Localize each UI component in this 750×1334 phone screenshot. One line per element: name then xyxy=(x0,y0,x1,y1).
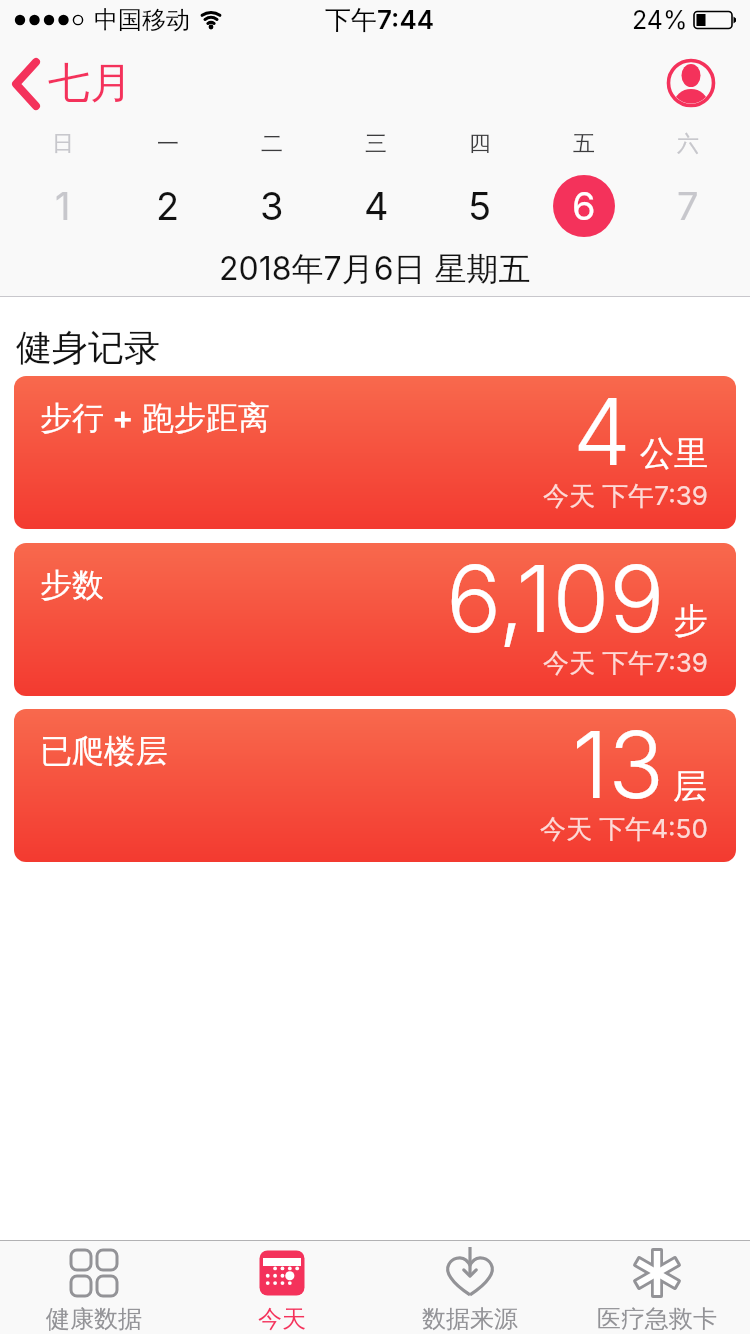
staticText: 2 xyxy=(156,183,180,229)
staticText: 今天 xyxy=(258,1304,306,1334)
staticText: 数据来源 xyxy=(422,1304,518,1334)
staticText: 今天 下午7:39 xyxy=(543,647,708,677)
staticText: 4 公里 xyxy=(573,376,708,487)
staticText: 健康数据 xyxy=(46,1304,142,1334)
button[interactable]: 1 xyxy=(10,162,115,250)
staticText: 3 xyxy=(260,183,284,229)
staticText: 2018年7月6日 星期五 xyxy=(219,249,531,290)
staticText: 三 xyxy=(365,130,387,158)
staticText: 今天 下午7:39 xyxy=(543,480,708,510)
button[interactable]: 数据来源 xyxy=(376,1241,564,1334)
staticText: 五 xyxy=(573,130,595,158)
button[interactable]: 步数 xyxy=(14,543,736,696)
button[interactable]: 2 xyxy=(115,162,220,250)
button[interactable]: 已爬楼层 xyxy=(14,709,736,862)
staticText: 24% xyxy=(632,5,688,35)
staticText: 步行 + 跑步距离 xyxy=(40,398,270,439)
staticText: 一 xyxy=(157,130,179,158)
button[interactable]: 七月 xyxy=(12,57,132,110)
button[interactable]: 5 xyxy=(428,162,532,250)
staticText: 今天 下午4:50 xyxy=(540,813,708,843)
button[interactable] xyxy=(666,58,716,108)
staticText: 二 xyxy=(261,130,283,158)
staticText: 已爬楼层 xyxy=(40,731,168,771)
staticText: 步数 xyxy=(40,565,104,605)
staticText: 七月 xyxy=(48,57,132,110)
staticText: 7 xyxy=(677,183,699,229)
button[interactable]: 今天 xyxy=(188,1241,376,1334)
button[interactable]: 6 xyxy=(532,162,636,250)
button[interactable]: 健康数据 xyxy=(0,1241,188,1334)
staticText: 健身记录 xyxy=(16,325,160,370)
button[interactable]: 医疗急救卡 xyxy=(564,1241,750,1334)
button[interactable]: 4 xyxy=(324,162,428,250)
staticText: 四 xyxy=(469,130,491,158)
button[interactable]: 3 xyxy=(220,162,324,250)
staticText: 6 xyxy=(572,183,596,229)
staticText: 4 xyxy=(364,183,389,229)
staticText: 中国移动 xyxy=(94,5,190,35)
button[interactable]: 步行 + 跑步距离 xyxy=(14,376,736,529)
staticText: 下午7:44 xyxy=(325,4,435,37)
staticText: 1 xyxy=(55,183,71,229)
button[interactable]: 7 xyxy=(636,162,740,250)
staticText: 5 xyxy=(468,183,492,229)
staticText: 13 层 xyxy=(572,709,708,820)
staticText: 6,109 步 xyxy=(446,543,708,654)
staticText: 日 xyxy=(52,130,74,158)
staticText: 医疗急救卡 xyxy=(597,1304,717,1334)
staticText: 六 xyxy=(677,130,699,158)
